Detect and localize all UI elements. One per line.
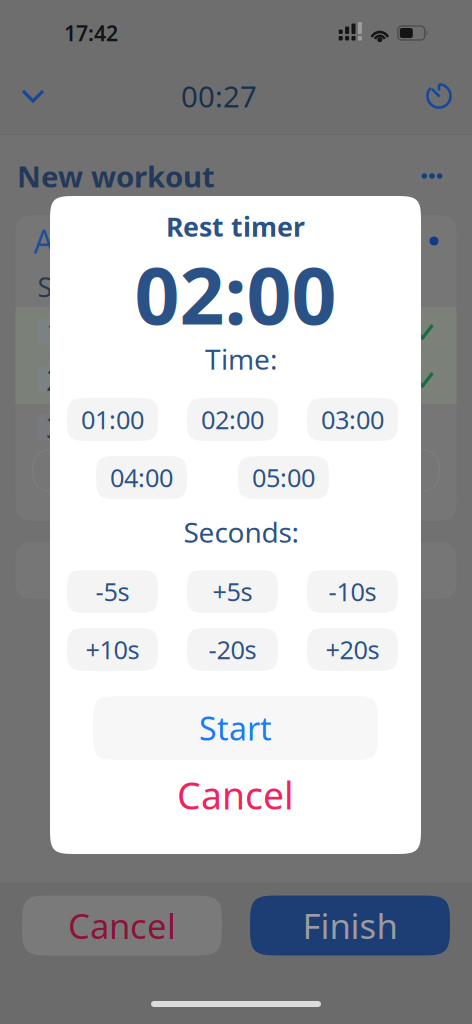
staticText: 3 xyxy=(46,407,63,446)
button[interactable]: -10s xyxy=(307,570,398,613)
button[interactable]: Start xyxy=(93,696,378,760)
button[interactable]: -5s xyxy=(67,570,158,613)
staticText: Arnold press xyxy=(33,220,222,262)
staticText: -5s xyxy=(95,575,129,608)
staticText: Set xyxy=(37,269,77,305)
staticText: Time: xyxy=(205,340,278,378)
staticText: +10s xyxy=(85,633,139,666)
staticText: +20s xyxy=(325,633,379,666)
staticText: -10s xyxy=(328,575,376,608)
staticText: 2 xyxy=(46,360,63,399)
button[interactable]: 05:00 xyxy=(238,456,329,499)
button[interactable]: Rest timer xyxy=(416,73,462,119)
staticText: 03:00 xyxy=(321,403,384,436)
button[interactable]: +5s xyxy=(187,570,278,613)
button[interactable]: Cancel xyxy=(125,777,345,813)
staticText: Start xyxy=(199,707,272,749)
button[interactable]: 04:00 xyxy=(96,456,187,499)
button[interactable]: 03:00 xyxy=(307,398,398,441)
staticText: 05:00 xyxy=(252,461,315,494)
button[interactable]: +20s xyxy=(307,628,398,671)
button[interactable]: +10s xyxy=(67,628,158,671)
staticText: kg xyxy=(170,269,200,305)
button[interactable]: Finish xyxy=(250,895,450,955)
button[interactable]: Collapse xyxy=(10,73,56,119)
staticText: 00:27 xyxy=(181,76,257,115)
staticText: 02:00 xyxy=(134,242,336,346)
button[interactable]: 02:00 xyxy=(187,398,278,441)
staticText: Seconds: xyxy=(183,513,299,551)
button[interactable]: 01:00 xyxy=(67,398,158,441)
staticText: Cancel xyxy=(177,770,294,820)
staticText: +5s xyxy=(212,575,252,608)
staticText: -20s xyxy=(208,633,256,666)
button[interactable]: More options xyxy=(412,156,452,196)
staticText: 02:00 xyxy=(201,403,264,436)
staticText: Rest timer xyxy=(166,209,305,244)
staticText: 04:00 xyxy=(110,461,173,494)
staticText: New workout xyxy=(17,156,215,195)
staticText: 17:42 xyxy=(64,19,118,47)
staticText: 1 xyxy=(46,312,63,351)
staticText: 01:00 xyxy=(81,403,144,436)
staticText: Finish xyxy=(302,902,397,948)
staticText: Cancel xyxy=(68,902,176,948)
button[interactable]: Cancel xyxy=(22,895,222,955)
button[interactable]: -20s xyxy=(187,628,278,671)
